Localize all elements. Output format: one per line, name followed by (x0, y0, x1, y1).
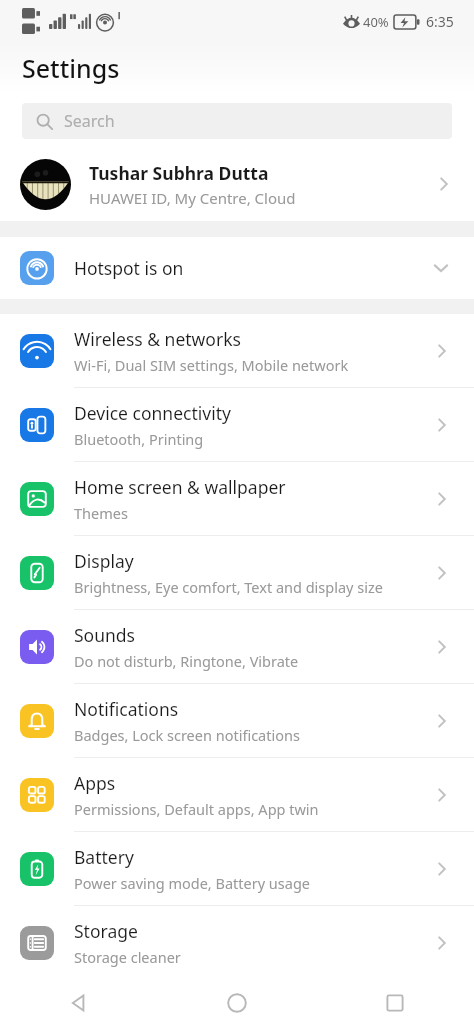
staticText: Permissions, Default apps, App twin (74, 799, 319, 819)
button[interactable]: Battery (0, 832, 474, 905)
button[interactable]: Home screen & wallpaper (0, 462, 474, 535)
button[interactable]: Back (0, 979, 158, 1027)
staticText: Tushar Subhra Dutta (89, 161, 269, 185)
staticText: Apps (74, 771, 116, 795)
staticText: Badges, Lock screen notifications (74, 725, 300, 745)
staticText: Wi-Fi, Dual SIM settings, Mobile network (74, 355, 349, 375)
staticText: Storage cleaner (74, 947, 181, 967)
staticText: Do not disturb, Ringtone, Vibrate (74, 651, 299, 671)
staticText: Storage (74, 919, 138, 943)
button[interactable]: Sounds (0, 610, 474, 683)
button[interactable]: Storage (0, 906, 474, 979)
staticText: 6:35 (426, 12, 454, 31)
staticText: Home screen & wallpaper (74, 475, 286, 499)
button[interactable]: Device connectivity (0, 388, 474, 461)
staticText: Bluetooth, Printing (74, 429, 204, 449)
button[interactable]: Search (22, 103, 452, 139)
button[interactable]: Tushar Subhra Dutta (0, 147, 474, 221)
button[interactable]: Apps (0, 758, 474, 831)
button[interactable]: Wireless & networks (0, 314, 474, 387)
staticText: Settings (22, 51, 120, 85)
staticText: HUAWEI ID, My Centre, Cloud (89, 188, 296, 208)
staticText: Notifications (74, 697, 179, 721)
button[interactable]: Hotspot is on (0, 237, 474, 299)
staticText: 40% (363, 13, 389, 31)
staticText: Hotspot is on (74, 256, 430, 280)
button[interactable]: Recents (316, 979, 474, 1027)
staticText: Wireless & networks (74, 327, 241, 351)
button[interactable]: Notifications (0, 684, 474, 757)
staticText: Themes (74, 503, 128, 523)
button[interactable]: Display (0, 536, 474, 609)
other: Expand hotspot details (430, 257, 452, 279)
staticText: Device connectivity (74, 401, 231, 425)
staticText: Display (74, 549, 134, 573)
staticText: Battery (74, 845, 134, 869)
staticText: Power saving mode, Battery usage (74, 873, 311, 893)
staticText: Search (64, 110, 115, 132)
button[interactable]: Home (158, 979, 316, 1027)
staticText: Brightness, Eye comfort, Text and displa… (74, 577, 383, 597)
staticText: Sounds (74, 623, 135, 647)
